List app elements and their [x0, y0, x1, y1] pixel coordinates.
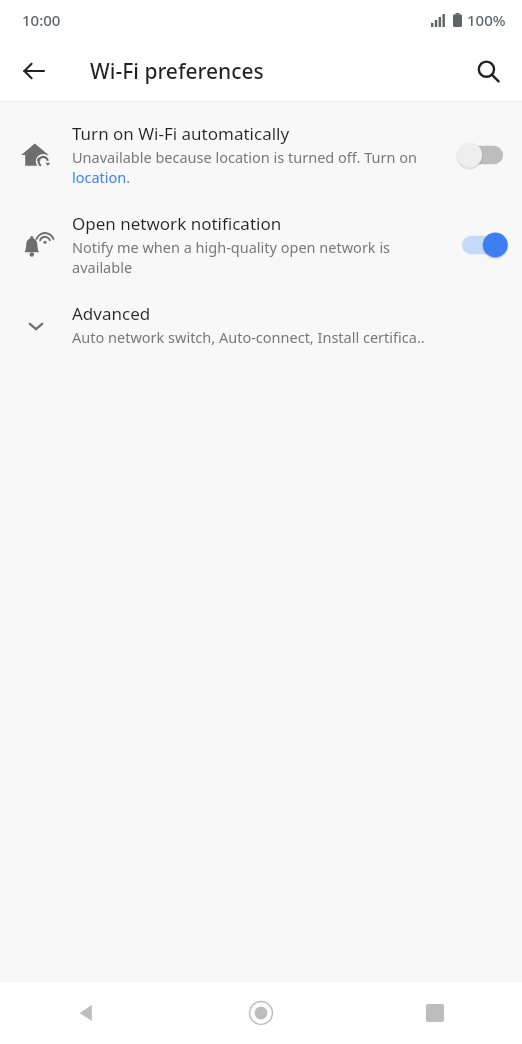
- button[interactable]: Open network notification: [0, 200, 522, 290]
- button[interactable]: Advanced: [0, 290, 522, 362]
- button[interactable]: Home: [174, 982, 348, 1044]
- staticText: 100%: [467, 10, 506, 30]
- staticText: Auto network switch, Auto-connect, Insta…: [72, 327, 425, 347]
- staticText: Unavailable because location is turned o…: [72, 147, 434, 188]
- button[interactable]: Back: [10, 47, 58, 95]
- staticText: Wi-Fi preferences: [90, 57, 264, 86]
- staticText: Open network notification: [72, 212, 282, 235]
- button[interactable]: Search: [464, 47, 512, 95]
- button[interactable]: Open network notification toggle: [442, 212, 522, 278]
- button[interactable]: Back: [0, 982, 174, 1044]
- button[interactable]: Turn on Wi-Fi automatically: [0, 110, 522, 200]
- button[interactable]: Turn on Wi-Fi automatically toggle: [442, 122, 522, 188]
- button[interactable]: Recent apps: [348, 982, 522, 1044]
- staticText: Advanced: [72, 302, 151, 325]
- staticText: Notify me when a high-quality open netwo…: [72, 237, 434, 278]
- staticText: Turn on Wi-Fi automatically: [72, 122, 290, 145]
- staticText: 10:00: [22, 10, 61, 30]
